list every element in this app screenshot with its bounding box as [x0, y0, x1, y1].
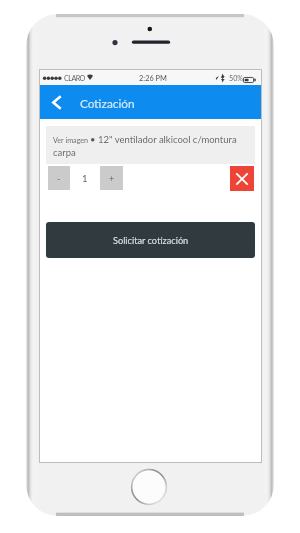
button[interactable]: Ver imagen • 12" ventilador alkicool c/m…: [46, 126, 255, 164]
button[interactable]: Back: [40, 85, 73, 119]
button[interactable]: Aumentar: [100, 166, 123, 190]
staticText: +: [109, 173, 115, 184]
staticText: 2:26 PM: [139, 74, 167, 83]
button[interactable]: Eliminar: [230, 166, 254, 191]
button[interactable]: Solicitar cotización: [46, 222, 255, 258]
staticText: Solicitar cotización: [113, 235, 189, 246]
staticText: CLARO: [64, 74, 85, 83]
staticText: 50%: [229, 74, 244, 83]
button[interactable]: Disminuir: [48, 166, 70, 190]
staticText: Cotización: [80, 96, 135, 110]
staticText: 1: [82, 173, 88, 184]
staticText: -: [57, 173, 61, 184]
staticText: Ver imagen • 12" ventilador alkicool c/m…: [53, 134, 255, 158]
